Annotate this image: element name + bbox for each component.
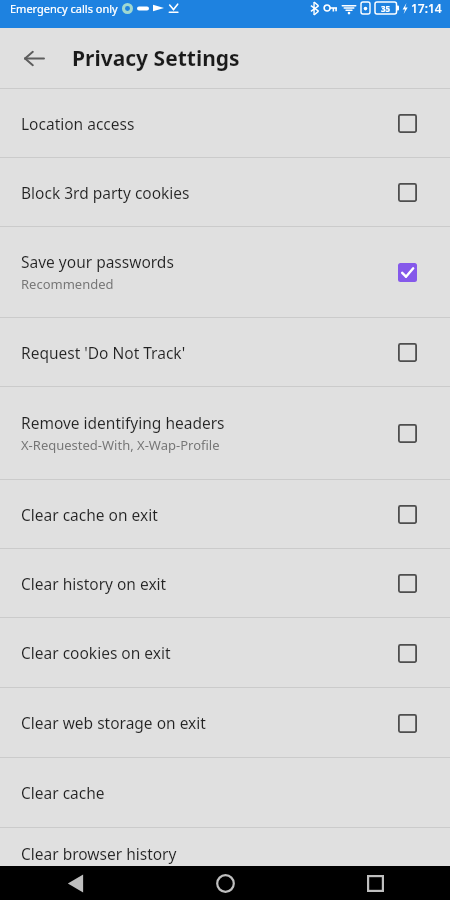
- staticText: 35: [381, 3, 391, 14]
- button[interactable]: Clear cache: [0, 758, 450, 827]
- button[interactable]: Save your passwords: [0, 227, 450, 317]
- button[interactable]: Location access: [0, 89, 450, 157]
- staticText: Location access: [21, 113, 135, 134]
- button[interactable]: Clear cookies on exit: [0, 618, 450, 687]
- button[interactable]: Unchecked: [390, 636, 424, 670]
- button[interactable]: Back: [14, 38, 54, 78]
- button[interactable]: Clear history on exit: [0, 549, 450, 617]
- button[interactable]: Checked: [390, 255, 424, 289]
- button[interactable]: Block 3rd party cookies: [0, 158, 450, 226]
- staticText: Clear cache: [21, 782, 105, 803]
- staticText: Clear web storage on exit: [21, 712, 206, 733]
- button[interactable]: Unchecked: [390, 706, 424, 740]
- button[interactable]: Recent apps: [300, 866, 450, 900]
- button[interactable]: Clear browser history: [0, 828, 450, 866]
- button[interactable]: Unchecked: [390, 497, 424, 531]
- staticText: Privacy Settings: [72, 44, 240, 73]
- staticText: Request 'Do Not Track': [21, 342, 186, 363]
- staticText: Clear browser history: [21, 843, 177, 864]
- button[interactable]: Back: [0, 866, 150, 900]
- button[interactable]: Remove identifying headers: [0, 387, 450, 479]
- button[interactable]: Unchecked: [390, 566, 424, 600]
- button[interactable]: Home: [150, 866, 300, 900]
- staticText: Clear cache on exit: [21, 504, 158, 525]
- staticText: Remove identifying headers: [21, 412, 225, 433]
- staticText: Clear history on exit: [21, 573, 167, 594]
- button[interactable]: Unchecked: [390, 175, 424, 209]
- staticText: 17:14: [411, 0, 442, 16]
- button[interactable]: Request 'Do Not Track': [0, 318, 450, 386]
- staticText: Recommended: [21, 275, 114, 293]
- button[interactable]: Clear cache on exit: [0, 480, 450, 548]
- button[interactable]: Clear web storage on exit: [0, 688, 450, 757]
- staticText: Block 3rd party cookies: [21, 182, 190, 203]
- staticText: Clear cookies on exit: [21, 642, 171, 663]
- staticText: Save your passwords: [21, 251, 174, 272]
- button[interactable]: Unchecked: [390, 416, 424, 450]
- staticText: Emergency calls only: [10, 1, 118, 16]
- button[interactable]: Unchecked: [390, 106, 424, 140]
- staticText: X-Requested-With, X-Wap-Profile: [21, 436, 220, 454]
- button[interactable]: Unchecked: [390, 335, 424, 369]
